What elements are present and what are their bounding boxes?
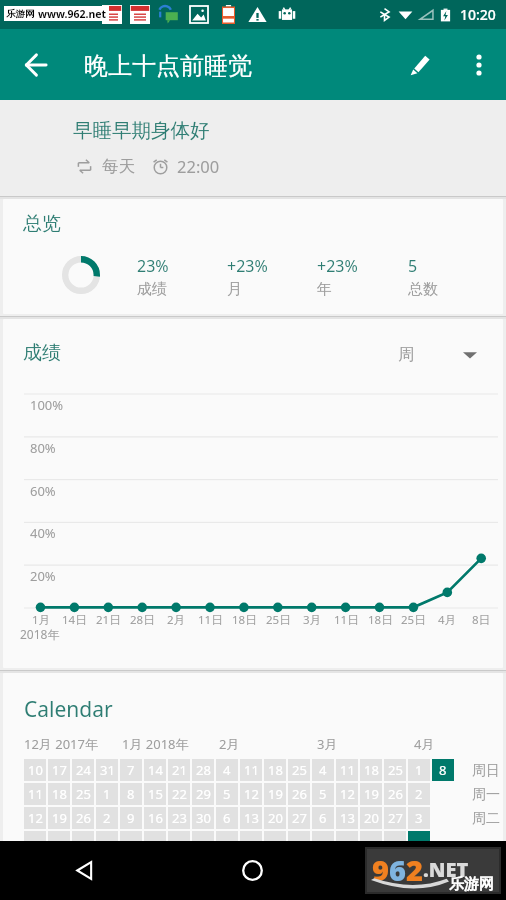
button[interactable]: 7 xyxy=(120,759,142,781)
staticText: 5 xyxy=(408,255,418,277)
button[interactable] xyxy=(264,831,286,843)
button[interactable] xyxy=(336,831,358,843)
staticText: 周二 xyxy=(472,810,500,828)
button[interactable]: 22 xyxy=(168,783,190,805)
staticText: 25日 xyxy=(266,612,291,628)
button[interactable] xyxy=(312,831,334,843)
button[interactable]: 11 xyxy=(24,783,46,805)
button[interactable]: 26 xyxy=(288,783,310,805)
button[interactable]: Back xyxy=(14,43,58,87)
button[interactable]: 18 xyxy=(360,759,382,781)
staticText: 14 xyxy=(148,761,163,779)
button[interactable]: 11 xyxy=(240,759,262,781)
staticText: 28日 xyxy=(130,612,155,628)
staticText: 18 xyxy=(52,785,67,803)
button[interactable]: 19 xyxy=(360,783,382,805)
button[interactable]: 28 xyxy=(192,759,214,781)
staticText: 18日 xyxy=(368,612,393,628)
button[interactable]: 12 xyxy=(336,783,358,805)
staticText: 2 xyxy=(406,850,423,889)
button[interactable]: 13 xyxy=(336,807,358,829)
button[interactable]: More options xyxy=(457,43,501,87)
button[interactable]: 26 xyxy=(72,807,94,829)
button[interactable]: 23 xyxy=(168,807,190,829)
button[interactable]: 15 xyxy=(144,783,166,805)
staticText: 26 xyxy=(292,785,307,803)
button[interactable] xyxy=(384,831,406,843)
button[interactable]: 25 xyxy=(384,759,406,781)
button[interactable] xyxy=(120,831,142,843)
button[interactable]: 8 xyxy=(120,783,142,805)
button[interactable]: 周 xyxy=(398,345,477,365)
button[interactable] xyxy=(144,831,166,843)
button[interactable]: 19 xyxy=(48,807,70,829)
staticText: 23 xyxy=(172,809,187,827)
button[interactable]: 5 xyxy=(312,783,334,805)
button[interactable]: 18 xyxy=(48,783,70,805)
staticText: 2月 xyxy=(167,612,186,628)
button[interactable] xyxy=(288,831,310,843)
button[interactable]: 14 xyxy=(144,759,166,781)
button[interactable]: 11 xyxy=(336,759,358,781)
button[interactable]: 17 xyxy=(48,759,70,781)
staticText: 周一 xyxy=(472,786,500,804)
button[interactable]: 8 xyxy=(432,759,454,781)
button[interactable]: 4 xyxy=(216,759,238,781)
button[interactable] xyxy=(168,831,190,843)
button[interactable]: 2 xyxy=(96,807,118,829)
button[interactable]: 16 xyxy=(144,807,166,829)
button[interactable]: 6 xyxy=(312,807,334,829)
button[interactable]: 10 xyxy=(24,759,46,781)
staticText: 25 xyxy=(76,785,91,803)
staticText: 60% xyxy=(30,482,56,500)
button[interactable]: 26 xyxy=(384,783,406,805)
button[interactable]: 2 xyxy=(408,783,430,805)
button[interactable] xyxy=(72,831,94,843)
button[interactable]: 13 xyxy=(240,807,262,829)
button[interactable]: Home xyxy=(168,841,337,900)
button[interactable]: Recents xyxy=(337,841,506,900)
button[interactable] xyxy=(408,831,430,843)
button[interactable]: 24 xyxy=(72,759,94,781)
button[interactable]: 21 xyxy=(168,759,190,781)
staticText: 27 xyxy=(292,809,307,827)
staticText: 25 xyxy=(292,761,307,779)
button[interactable]: 29 xyxy=(192,783,214,805)
button[interactable] xyxy=(240,831,262,843)
button[interactable]: 4 xyxy=(312,759,334,781)
button[interactable]: 25 xyxy=(72,783,94,805)
staticText: 每天 xyxy=(102,156,135,177)
button[interactable] xyxy=(192,831,214,843)
button[interactable]: Edit xyxy=(398,43,442,87)
staticText: 11日 xyxy=(198,612,223,628)
button[interactable]: 20 xyxy=(360,807,382,829)
button[interactable]: 27 xyxy=(288,807,310,829)
button[interactable]: 19 xyxy=(264,783,286,805)
button[interactable]: 1 xyxy=(408,759,430,781)
button[interactable]: 25 xyxy=(288,759,310,781)
staticText: 13 xyxy=(340,809,355,827)
button[interactable]: 3 xyxy=(408,807,430,829)
button[interactable]: 18 xyxy=(264,759,286,781)
button[interactable]: 5 xyxy=(216,783,238,805)
button[interactable]: Back xyxy=(0,841,168,900)
button[interactable]: 6 xyxy=(216,807,238,829)
button[interactable]: 1 xyxy=(96,783,118,805)
button[interactable]: 20 xyxy=(264,807,286,829)
button[interactable]: 12 xyxy=(240,783,262,805)
staticText: 总数 xyxy=(408,280,438,299)
staticText: 8 xyxy=(127,785,135,803)
button[interactable]: 30 xyxy=(192,807,214,829)
staticText: 26 xyxy=(388,785,403,803)
staticText: 18日 xyxy=(232,612,257,628)
button[interactable] xyxy=(360,831,382,843)
button[interactable] xyxy=(216,831,238,843)
button[interactable]: 27 xyxy=(384,807,406,829)
button[interactable]: 31 xyxy=(96,759,118,781)
button[interactable] xyxy=(96,831,118,843)
staticText: +23% xyxy=(227,255,268,277)
button[interactable] xyxy=(48,831,70,843)
button[interactable]: 9 xyxy=(120,807,142,829)
button[interactable] xyxy=(24,831,46,843)
button[interactable]: 12 xyxy=(24,807,46,829)
